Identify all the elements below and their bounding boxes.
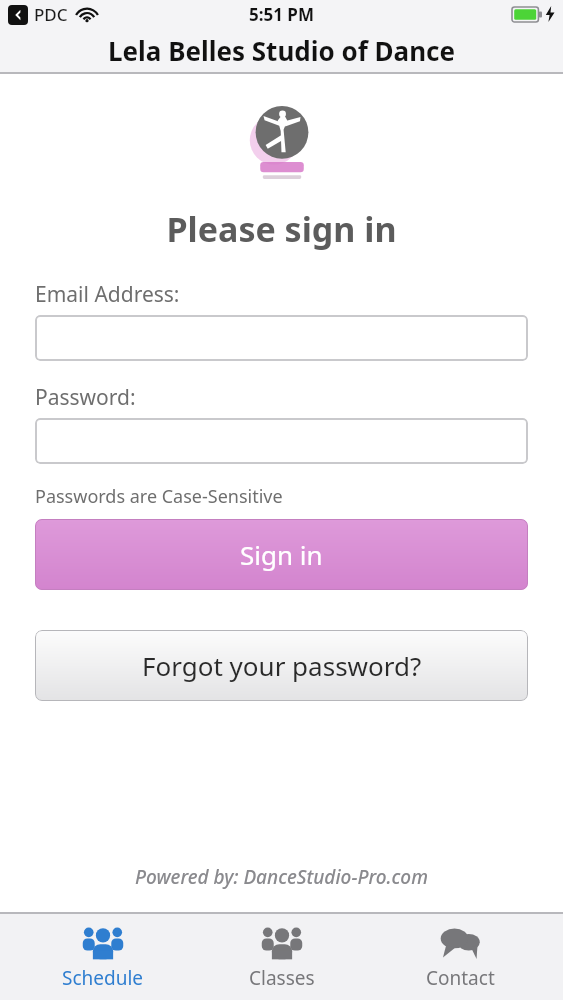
staticText: Schedule bbox=[62, 965, 144, 991]
staticText: Email Address: bbox=[35, 280, 180, 309]
button[interactable]: Contact bbox=[385, 918, 535, 997]
staticText: Please sign in bbox=[0, 206, 563, 252]
staticText: Forgot your password? bbox=[142, 648, 422, 683]
button[interactable] bbox=[35, 418, 528, 464]
button[interactable] bbox=[35, 315, 528, 361]
button[interactable]: Classes bbox=[207, 918, 357, 997]
staticText: Passwords are Case-Sensitive bbox=[35, 484, 283, 509]
staticText: Classes bbox=[249, 965, 315, 991]
staticText: Contact bbox=[426, 965, 495, 991]
staticText: Sign in bbox=[240, 537, 323, 572]
staticText: PDC bbox=[34, 3, 68, 26]
staticText: Powered by: DanceStudio-Pro.com bbox=[0, 864, 563, 890]
button[interactable]: Schedule bbox=[28, 918, 178, 997]
button[interactable]: Forgot your password? bbox=[35, 630, 528, 701]
staticText: Password: bbox=[35, 383, 136, 412]
button[interactable]: Sign in bbox=[35, 519, 528, 590]
staticText: Lela Belles Studio of Dance bbox=[108, 33, 456, 68]
staticText: 5:51 PM bbox=[249, 3, 314, 26]
button[interactable]: Back bbox=[8, 5, 28, 25]
